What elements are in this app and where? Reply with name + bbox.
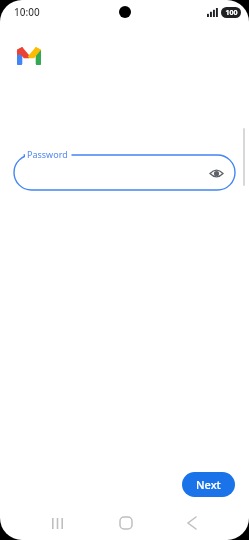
staticText: 100: [225, 8, 238, 18]
button[interactable]: Recent apps: [44, 510, 70, 536]
staticText: Password: [27, 148, 68, 160]
button[interactable]: Show password: [14, 155, 235, 190]
staticText: Next: [196, 477, 221, 492]
button[interactable]: Home: [113, 510, 139, 536]
button[interactable]: Show password: [205, 162, 227, 184]
button[interactable]: Back: [179, 510, 205, 536]
staticText: 10:00: [14, 5, 40, 19]
button[interactable]: Next: [182, 472, 235, 497]
